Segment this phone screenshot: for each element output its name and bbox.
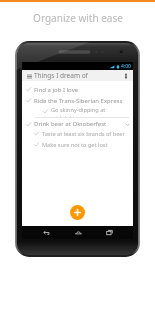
button[interactable]: Go skinny-dipping at midnight bbox=[35, 106, 129, 117]
button[interactable]: Back bbox=[39, 226, 53, 239]
staticText: Drink beer at Oktoberfest bbox=[34, 120, 107, 128]
button[interactable]: Ride the Trans-Siberian Express bbox=[22, 95, 133, 106]
staticText: 4:00 bbox=[121, 63, 131, 70]
button[interactable]: Taste at least six brands of beer bbox=[22, 128, 133, 139]
staticText: Ride the Trans-Siberian Express bbox=[34, 97, 123, 105]
button[interactable]: Make sure not to get lost bbox=[22, 139, 133, 150]
staticText: Go skinny-dipping at midnight bbox=[51, 106, 129, 117]
button[interactable]: Add item bbox=[70, 205, 85, 220]
button[interactable]: Home bbox=[71, 226, 85, 239]
staticText: Things I dream of bbox=[34, 71, 88, 80]
button[interactable]: Find a job I love bbox=[22, 84, 133, 95]
staticText: Organize with ease bbox=[33, 11, 123, 25]
button[interactable]: More options bbox=[121, 71, 130, 80]
button[interactable]: Menu bbox=[25, 72, 33, 80]
staticText: Taste at least six brands of beer bbox=[42, 130, 125, 138]
button[interactable]: Recent apps bbox=[102, 226, 116, 239]
staticText: Find a job I love bbox=[34, 86, 79, 94]
staticText: Make sure not to get lost bbox=[42, 141, 108, 149]
button[interactable]: Drink beer at Oktoberfest bbox=[22, 120, 133, 128]
